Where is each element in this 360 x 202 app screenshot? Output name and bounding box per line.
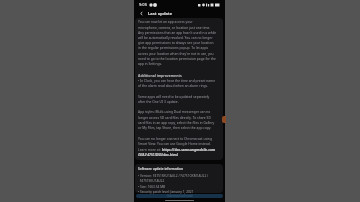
staticText: Download and install	[167, 194, 193, 198]
staticText: app in Settings.	[138, 61, 162, 65]
staticText: You can no longer connect to Chromecast …	[138, 136, 212, 140]
button[interactable]: https://doc.samsungmobile.com	[162, 147, 216, 151]
staticText: Learn more at:	[138, 147, 162, 151]
staticText: after the One UI 3 update.	[138, 99, 179, 103]
button[interactable]: /SM-F4751/INS/doc.html	[138, 152, 178, 156]
staticText: of the alarm read aloud when an alarm ri…	[138, 83, 209, 87]
staticText: Smart View. You can use Google Home inst…	[138, 141, 211, 145]
staticText: access your location when they're not in…	[138, 51, 214, 55]
staticText: Software update information	[138, 167, 183, 171]
staticText: need to go to the location permission pa…	[138, 56, 216, 60]
staticText: Additional improvements	[138, 73, 182, 78]
staticText: or My Files, tap Share, then select the …	[138, 125, 212, 129]
staticText: will be automatically revoked. You can n…	[138, 35, 213, 39]
staticText: Last update	[148, 11, 173, 17]
staticText: give app permissions to always see your …	[138, 40, 214, 44]
staticText: 9:05	[139, 2, 147, 7]
staticText: Some apps will need to be updated separa…	[138, 94, 210, 98]
staticText: card files in an app copy, select the fi…	[138, 120, 215, 124]
staticText: Any permissions that an app hasn't used …	[138, 30, 217, 34]
button[interactable]: Download and install	[136, 194, 223, 198]
staticText: • Version: F4751SKU1AUL2 / F4751OXM1AUL2…	[138, 174, 209, 178]
staticText: You can now let an app access your	[138, 19, 193, 23]
staticText: F4751SKU1AUL2	[138, 179, 165, 183]
staticText: in the regular permissions popup. To let…	[138, 45, 209, 49]
button[interactable]: Back	[137, 9, 146, 18]
staticText: Learn more at:	[138, 147, 162, 151]
staticText: longer access SD card files directly. To…	[138, 115, 211, 119]
staticText: microphone, camera, or location just one…	[138, 25, 211, 29]
staticText: App styles: Multi-using Dual messenger c…	[138, 109, 211, 113]
staticText: • In Clock, you can hear the time and pr…	[138, 78, 216, 82]
staticText: • Security patch level: January 1, 2021	[138, 190, 194, 194]
staticText: • Size: 1663.54 MB	[138, 185, 166, 189]
